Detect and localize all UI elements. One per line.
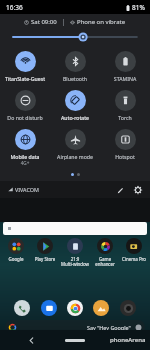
staticText: 81% [132, 3, 145, 12]
staticText: Cinema Pro [120, 256, 148, 262]
button[interactable]: Play Store [31, 238, 59, 262]
staticText: 4G+ [0, 160, 50, 166]
button[interactable]: Edit tiles [113, 183, 127, 197]
button[interactable]: Game enhancer [91, 238, 119, 268]
staticText: Game enhancer [91, 256, 119, 268]
button[interactable] [3, 222, 147, 235]
staticText: Say "Hey Google" [87, 324, 131, 331]
staticText: TitanSlate-Guest [1, 75, 49, 82]
button[interactable] [13, 31, 137, 43]
button[interactable]: STAMINA [100, 50, 150, 83]
staticText: Play Store [31, 256, 59, 262]
button[interactable]: VIVACOM [6, 184, 41, 195]
staticText: STAMINA [101, 75, 149, 82]
staticText: Sat 09:00 [31, 18, 57, 26]
staticText: Torch [101, 114, 149, 121]
staticText: Phone on vibrate [77, 18, 126, 26]
button[interactable]: Auto-rotate [50, 89, 100, 122]
button[interactable]: Phone on vibrate [68, 17, 128, 27]
button[interactable]: Back [24, 333, 38, 347]
button[interactable]: 21:9 Multi-window [61, 238, 89, 268]
staticText: Hotspot [101, 153, 149, 160]
button[interactable]: Bluetooth [50, 50, 100, 83]
button[interactable]: Hotspot [100, 128, 150, 161]
button[interactable]: App [41, 300, 57, 316]
staticText: Do not disturb [1, 114, 49, 121]
button[interactable]: App [14, 300, 30, 316]
button[interactable]: App [120, 300, 136, 316]
staticText: phoneArena [110, 336, 146, 344]
button[interactable]: Mobile data [0, 128, 50, 167]
staticText: Airplane mode [51, 153, 99, 160]
button[interactable]: App [67, 300, 83, 316]
button[interactable]: Google [2, 238, 30, 262]
staticText: 16:36 [6, 3, 23, 12]
button[interactable]: Sat 09:00 [22, 17, 59, 27]
staticText: Mobile data [1, 153, 49, 160]
staticText: Google [2, 256, 30, 262]
button[interactable]: App [93, 300, 109, 316]
staticText: 21:9 Multi-window [61, 256, 89, 268]
button[interactable]: Say "Hey Google" [5, 320, 145, 334]
button[interactable]: Home [64, 336, 86, 344]
staticText: Auto-rotate [51, 114, 99, 121]
staticText: VIVACOM [15, 186, 39, 193]
button[interactable]: Cinema Pro [120, 238, 148, 262]
button[interactable]: Airplane mode [50, 128, 100, 161]
button[interactable]: Settings [131, 183, 145, 197]
staticText: Bluetooth [51, 75, 99, 82]
button[interactable]: Torch [100, 89, 150, 122]
button[interactable]: Do not disturb [0, 89, 50, 122]
button[interactable]: TitanSlate-Guest [0, 50, 50, 83]
